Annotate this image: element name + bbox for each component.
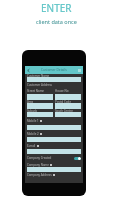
staticText: Customer Name [27,74,50,77]
staticText: ENTER [41,1,72,15]
staticText: Company Name [27,163,49,167]
staticText: Street Name [27,89,44,93]
staticText: Mobile 1 [27,119,39,123]
button[interactable]: Company Created [27,154,81,162]
staticText: Suburb [27,109,37,112]
staticText: South Centre [55,109,73,112]
staticText: Company Address [27,173,52,177]
staticText: Company Created [27,156,52,160]
staticText: Customer Details [41,68,67,72]
staticText: Postal Code [55,100,72,103]
staticText: Area [27,100,34,103]
staticText: client data once [36,18,77,25]
button[interactable]: Back [25,66,31,74]
button[interactable]: Save [76,66,83,74]
staticText: Mobile 2 [27,132,39,136]
staticText: E-mail [27,144,36,148]
staticText: House No [55,89,69,93]
staticText: Customer Address [27,83,53,87]
button[interactable]: Back [25,66,83,74]
